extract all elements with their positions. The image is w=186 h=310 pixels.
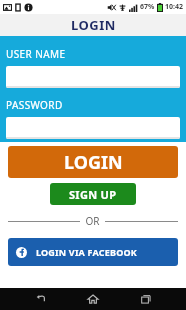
button[interactable] xyxy=(6,117,180,139)
staticText: LOGIN xyxy=(64,150,123,175)
staticText: SIGN UP xyxy=(69,187,117,202)
staticText: LOGIN xyxy=(71,16,116,34)
button[interactable]: LOGIN VIA FACEBOOK xyxy=(8,238,178,266)
button[interactable]: LOGIN xyxy=(8,146,178,178)
staticText: OR xyxy=(85,214,100,228)
staticText: 10:42 xyxy=(165,2,183,12)
button[interactable] xyxy=(6,66,180,88)
button[interactable]: Home xyxy=(81,288,105,310)
staticText: 67% xyxy=(140,2,155,12)
button[interactable]: SIGN UP xyxy=(50,183,136,205)
staticText: PASSWORD xyxy=(6,98,63,112)
staticText: LOGIN VIA FACEBOOK xyxy=(36,246,137,258)
staticText: USER NAME xyxy=(6,47,66,61)
button[interactable]: Back xyxy=(29,288,53,310)
button[interactable]: Recent apps xyxy=(134,288,158,310)
